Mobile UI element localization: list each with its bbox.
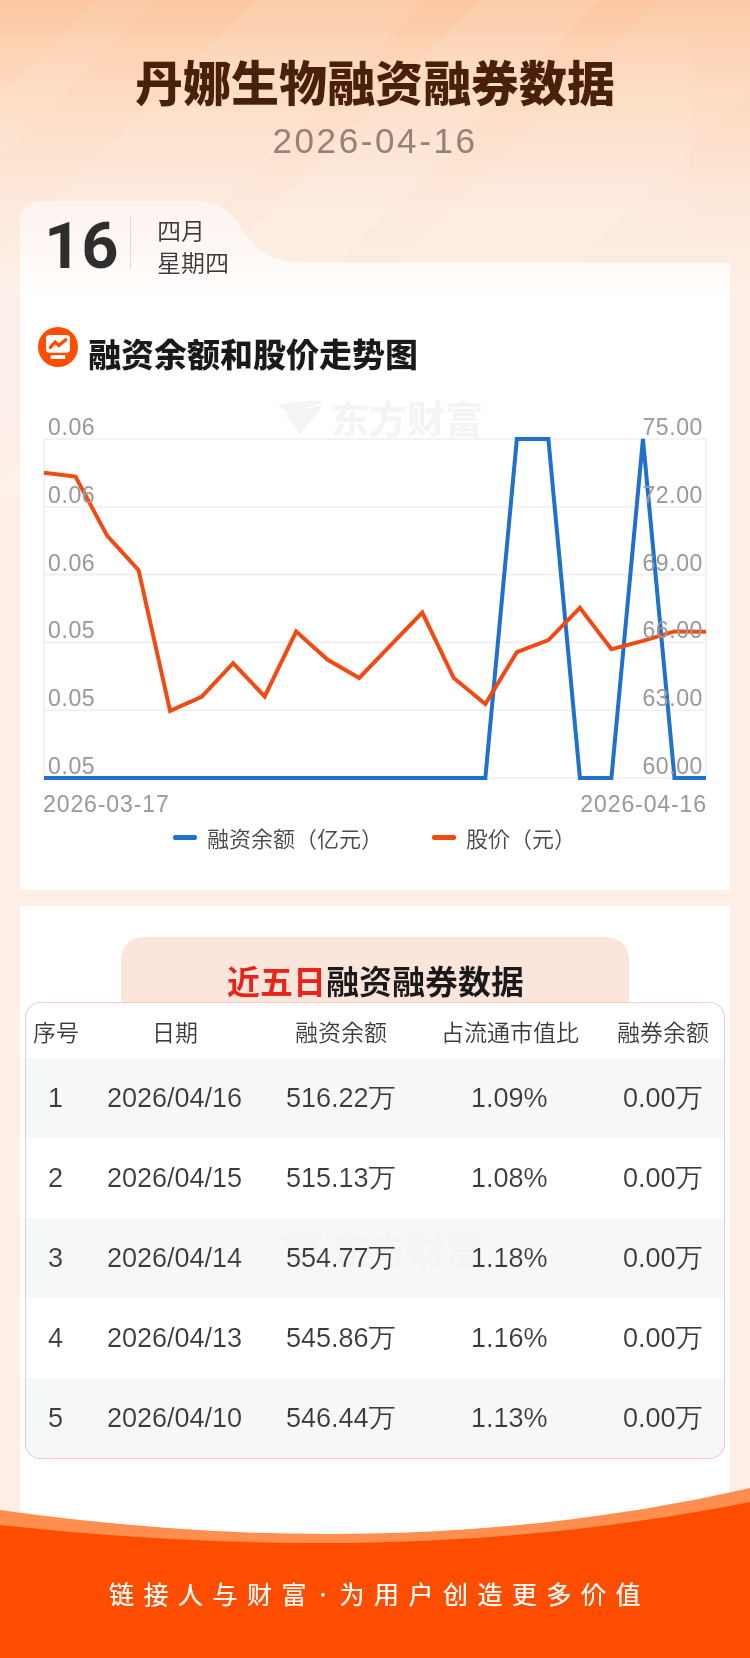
staticText: 554.77万: [286, 1241, 396, 1275]
staticText: 融资余额和股价走势图: [88, 329, 418, 377]
staticText: 515.13万: [286, 1161, 396, 1195]
staticText: 四月: [157, 212, 205, 247]
staticText: 融券余额: [617, 1014, 709, 1047]
staticText: 近五日: [227, 956, 326, 1004]
staticText: 占流通市值比: [441, 1014, 579, 1047]
staticText: 1.13%: [471, 1403, 548, 1433]
staticText: 2026/04/13: [107, 1323, 243, 1353]
staticText: 75.00: [0, 414, 703, 440]
staticText: 日期: [152, 1014, 198, 1047]
button[interactable]: 4: [25, 1298, 725, 1378]
button[interactable]: 5: [25, 1378, 725, 1458]
button[interactable]: 1: [25, 1058, 725, 1138]
button[interactable]: 3: [25, 1218, 725, 1298]
staticText: 丹娜生物融资融券数据: [0, 45, 750, 115]
staticText: 融资融券数据: [326, 956, 524, 1004]
button[interactable]: 2: [25, 1138, 725, 1218]
staticText: 序号: [33, 1014, 79, 1047]
staticText: 2026-04-16: [0, 791, 707, 817]
staticText: 63.00: [0, 685, 703, 711]
staticText: 0.00万: [623, 1321, 703, 1355]
staticText: 1.18%: [471, 1243, 548, 1273]
staticText: 0.05: [48, 753, 96, 779]
staticText: 0.00万: [623, 1241, 703, 1275]
staticText: 0.00万: [623, 1161, 703, 1195]
staticText: 5: [48, 1403, 64, 1433]
staticText: 69.00: [0, 550, 703, 576]
staticText: 545.86万: [286, 1321, 396, 1355]
staticText: 1.08%: [471, 1163, 548, 1193]
staticText: 融资余额: [295, 1014, 387, 1047]
staticText: 链接人与财富·为用户创造更多价值: [109, 1575, 651, 1611]
staticText: 2026-03-17: [43, 791, 170, 817]
staticText: 3: [48, 1243, 64, 1273]
staticText: 0.06: [48, 550, 96, 576]
staticText: 2026/04/16: [107, 1083, 243, 1113]
other: 融资余额和股价走势图: [38, 327, 78, 367]
staticText: 0.06: [48, 414, 96, 440]
staticText: 东方财富: [331, 1220, 484, 1275]
staticText: 66.00: [0, 617, 703, 643]
staticText: 2026/04/10: [107, 1403, 243, 1433]
staticText: 16: [44, 208, 119, 284]
staticText: 516.22万: [286, 1081, 396, 1115]
staticText: 2026-04-16: [0, 121, 750, 160]
staticText: 股价（元）: [466, 821, 577, 853]
staticText: 60.00: [0, 753, 703, 779]
staticText: 2026/04/15: [107, 1163, 243, 1193]
staticText: 1.09%: [471, 1083, 548, 1113]
staticText: 融资余额（亿元）: [207, 821, 384, 853]
staticText: 0.00万: [623, 1081, 703, 1115]
staticText: 0.05: [48, 617, 96, 643]
staticText: 546.44万: [286, 1401, 396, 1435]
staticText: 东方财富: [331, 389, 484, 444]
staticText: 2: [48, 1163, 64, 1193]
staticText: 2026/04/14: [107, 1243, 243, 1273]
staticText: 1.16%: [471, 1323, 548, 1353]
staticText: 4: [48, 1323, 64, 1353]
staticText: 0.06: [48, 482, 96, 508]
staticText: 0.05: [48, 685, 96, 711]
staticText: 0.00万: [623, 1401, 703, 1435]
staticText: 72.00: [0, 482, 703, 508]
staticText: 1: [48, 1083, 64, 1113]
staticText: 星期四: [157, 244, 229, 279]
